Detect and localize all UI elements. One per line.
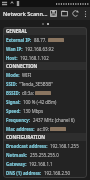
- staticText: Network Scann...: [3, 10, 48, 17]
- staticText: BSSID:: [6, 90, 20, 96]
- staticText: 192.168.1.255: [50, 143, 79, 149]
- staticText: External IP:: [6, 37, 32, 43]
- staticText: Wan IP:: [6, 46, 23, 52]
- button[interactable]: Frequency:: [3, 115, 87, 124]
- staticText: Speed:: [6, 108, 21, 114]
- staticText: 88.77.: [34, 37, 47, 43]
- button[interactable]: DNS (2) address:: [3, 177, 87, 178]
- staticText: GENERAL: [6, 28, 27, 34]
- button[interactable]: Netmask:: [3, 150, 87, 159]
- button[interactable]: Refresh: [70, 7, 81, 20]
- staticText: 100 % (-42 dBm): [23, 99, 57, 105]
- staticText: 192.168.2.50: [44, 170, 71, 176]
- button[interactable]: Host:: [3, 53, 87, 62]
- button[interactable]: BSSID:: [3, 88, 87, 97]
- staticText: ac:09:: [37, 126, 49, 132]
- button[interactable]: Wan IP:: [3, 44, 87, 53]
- staticText: "Tenda_3E5B5B": [19, 81, 53, 87]
- staticText: c8:3a:: [22, 90, 34, 96]
- button[interactable]: Speed:: [3, 106, 87, 115]
- staticText: SSID:: [6, 81, 17, 87]
- button[interactable]: Open folder: [59, 7, 70, 20]
- staticText: 192.168.1.102: [20, 55, 49, 61]
- staticText: Broadcast address:: [6, 143, 48, 149]
- staticText: Host:: [6, 55, 18, 61]
- button[interactable]: Gateway:: [3, 159, 87, 168]
- staticText: CONNECTION: [6, 63, 38, 69]
- button[interactable]: Mac address:: [3, 124, 87, 133]
- button[interactable]: External IP:: [3, 35, 87, 44]
- staticText: Netmask:: [6, 152, 28, 158]
- staticText: 130 Mbps: [23, 108, 44, 114]
- button[interactable]: Mode:: [3, 70, 87, 79]
- staticText: CONFIGURATION: [6, 134, 46, 140]
- button[interactable]: DNS (1) address:: [3, 168, 87, 177]
- staticText: 192.168.1.1: [29, 161, 53, 167]
- staticText: Gateway:: [6, 161, 27, 167]
- button[interactable]: Broadcast address:: [3, 141, 87, 150]
- staticText: 2437 MHz (chanel 6): [33, 117, 75, 123]
- staticText: 255.255.255.0: [30, 152, 59, 158]
- staticText: DNS (1) address:: [6, 170, 42, 176]
- staticText: 192.168.63.92: [25, 46, 54, 52]
- staticText: Frequency:: [6, 117, 31, 123]
- button[interactable]: Save: [48, 7, 59, 20]
- button[interactable]: More options: [81, 7, 89, 20]
- button[interactable]: Signal:: [3, 97, 87, 106]
- staticText: WIFI: [22, 72, 32, 78]
- staticText: Mac address:: [6, 126, 35, 132]
- button[interactable]: SSID:: [3, 79, 87, 88]
- staticText: Mode:: [6, 72, 20, 78]
- staticText: Signal:: [6, 99, 21, 105]
